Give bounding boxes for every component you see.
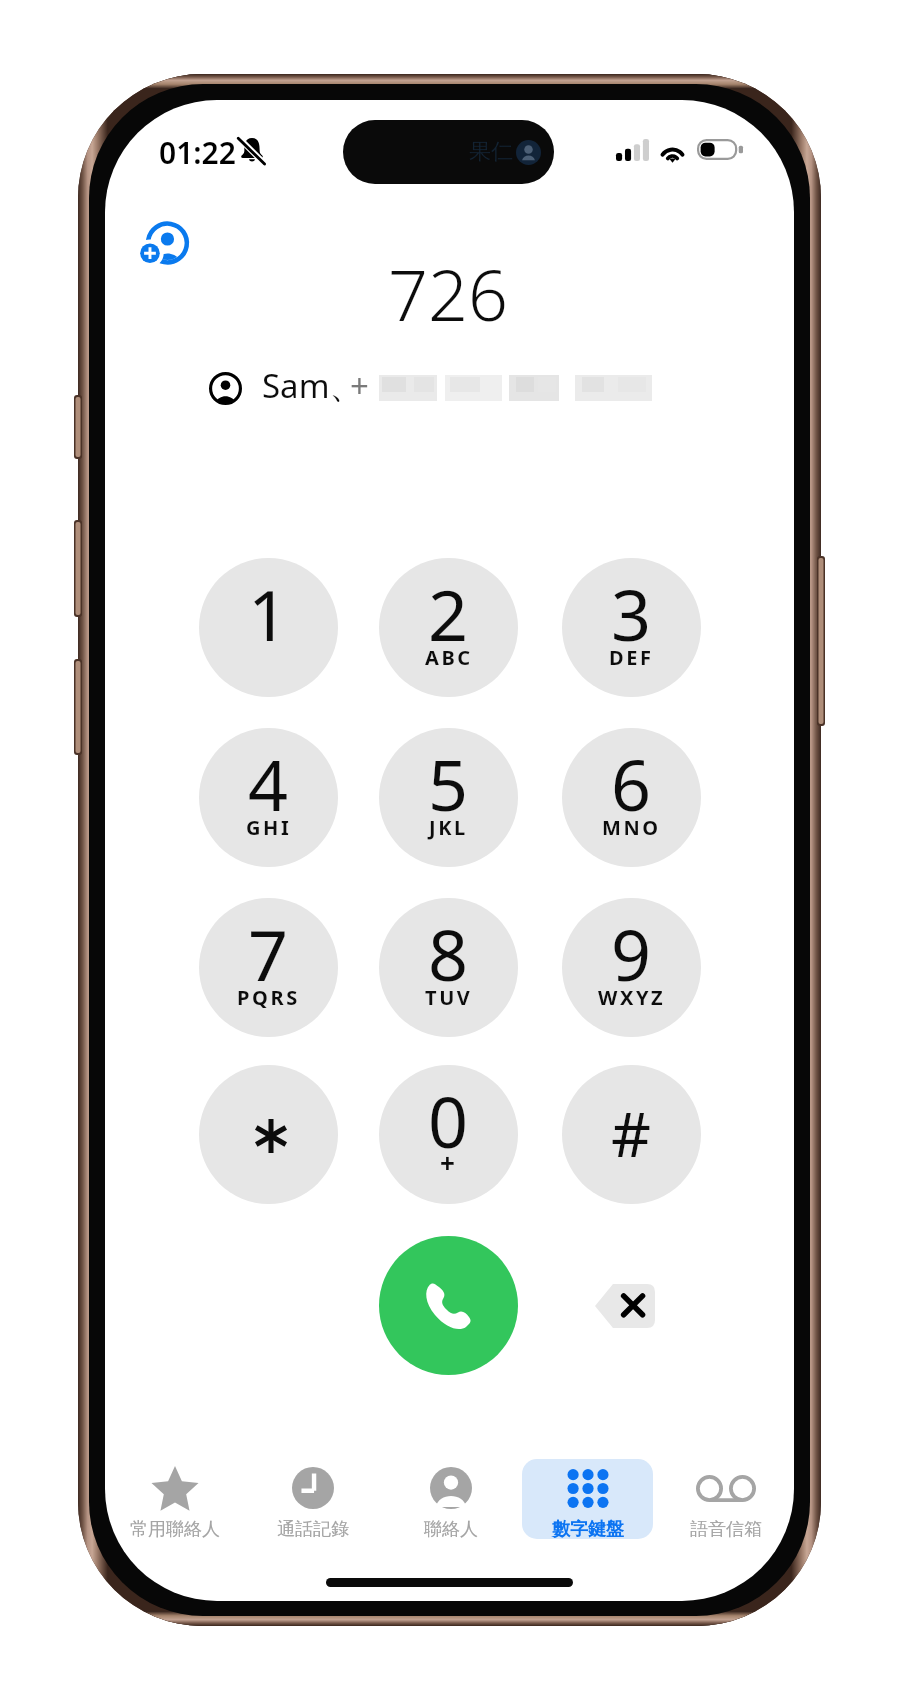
button[interactable]: 4 xyxy=(199,728,338,867)
button[interactable]: Add contact xyxy=(133,213,195,273)
button[interactable]: 0 xyxy=(379,1065,518,1204)
staticText: TUV xyxy=(425,984,473,1011)
button[interactable]: # xyxy=(562,1065,701,1204)
staticText: MNO xyxy=(602,814,661,841)
staticText: 常用聯絡人 xyxy=(130,1518,220,1539)
staticText: + xyxy=(440,1145,458,1180)
button[interactable]: 通話記錄 xyxy=(243,1434,381,1564)
button[interactable]: 8 xyxy=(379,898,518,1037)
staticText: 3 xyxy=(611,566,652,661)
staticText: Sam、 xyxy=(262,363,363,408)
button[interactable]: 常用聯絡人 xyxy=(105,1434,243,1564)
staticText: # xyxy=(611,1091,652,1175)
button[interactable]: 聯絡人 xyxy=(381,1434,519,1564)
button[interactable]: 7 xyxy=(199,898,338,1037)
button[interactable]: 1 xyxy=(199,558,338,697)
staticText: 5 xyxy=(428,736,469,831)
button[interactable]: 5 xyxy=(379,728,518,867)
staticText: 726 xyxy=(388,246,508,341)
staticText: ABC xyxy=(425,644,473,671)
button[interactable]: 9 xyxy=(562,898,701,1037)
button[interactable]: 2 xyxy=(379,558,518,697)
button[interactable]: Delete xyxy=(595,1284,655,1328)
button[interactable]: 6 xyxy=(562,728,701,867)
staticText: 語音信箱 xyxy=(690,1518,762,1539)
button[interactable]: Call xyxy=(379,1236,518,1375)
button[interactable]: 語音信箱 xyxy=(656,1434,794,1564)
staticText: 果仁 xyxy=(469,138,513,166)
staticText: PQRS xyxy=(237,984,300,1011)
button[interactable]: 3 xyxy=(562,558,701,697)
staticText: 通話記錄 xyxy=(277,1518,349,1539)
staticText: 1 xyxy=(248,566,289,661)
staticText: WXYZ xyxy=(598,984,666,1011)
staticText: 7 xyxy=(248,906,289,1001)
staticText: 數字鍵盤 xyxy=(552,1518,624,1539)
staticText: 聯絡人 xyxy=(424,1518,478,1539)
staticText: + xyxy=(350,363,369,408)
staticText: 8 xyxy=(428,906,469,1001)
staticText: 01:22 xyxy=(159,132,236,173)
staticText: JKL xyxy=(429,814,468,841)
staticText: 2 xyxy=(428,566,469,661)
staticText: 0 xyxy=(428,1073,469,1168)
staticText: DEF xyxy=(609,644,654,671)
staticText: 6 xyxy=(611,736,652,831)
staticText: 9 xyxy=(611,906,652,1001)
button[interactable]: 數字鍵盤 xyxy=(518,1434,656,1564)
staticText: GHI xyxy=(246,814,292,841)
staticText: 4 xyxy=(248,736,289,831)
button[interactable] xyxy=(199,1065,338,1204)
